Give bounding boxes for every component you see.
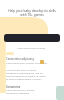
staticText: Consectetur [6, 85, 21, 88]
button[interactable]: Badge [6, 52, 14, 55]
staticText: Lorem ipsum dolor sit amet consectetur [6, 62, 48, 65]
button[interactable]: Award [40, 60, 44, 64]
staticText: Lorem ipsum dolor sit amet, consectetur … [6, 69, 47, 81]
staticText: Consectetur adipiscing [6, 57, 34, 61]
staticText: Help your baby develop its skills with 7… [7, 9, 57, 17]
button[interactable]: Play intro video [4, 34, 60, 42]
button[interactable]: Next card [56, 86, 64, 100]
staticText: lorem ipsum dolor sit amet [6, 47, 57, 50]
staticText: Lorem ipsum dolor sit amet, consectetur … [6, 89, 43, 95]
